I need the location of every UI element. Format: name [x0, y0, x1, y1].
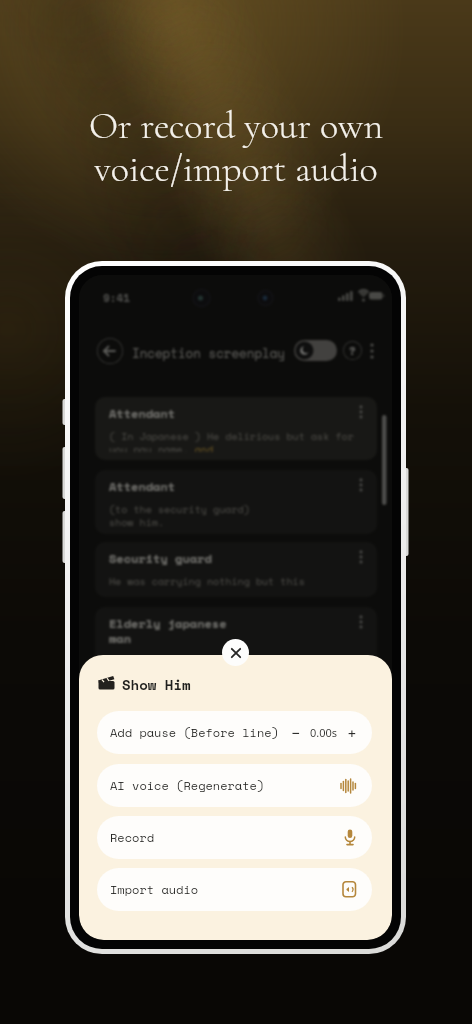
staticText: Security guard	[109, 550, 212, 568]
staticText: Elderly japanese man	[109, 615, 227, 647]
staticText: 0.00s	[310, 725, 338, 740]
staticText: Record	[110, 829, 155, 847]
button[interactable]: Attendant	[95, 470, 377, 534]
button[interactable]: Elderly japanese man	[95, 607, 377, 695]
staticText: +	[347, 721, 357, 745]
button[interactable]: Record	[97, 816, 372, 859]
staticText: Add pause (Before line)	[110, 724, 279, 742]
staticText: Import audio	[110, 881, 199, 899]
button[interactable]: Security guard	[95, 542, 377, 597]
staticText: Inception screenplay	[132, 344, 286, 363]
staticText: AI voice (Regenerate)	[110, 777, 265, 795]
button[interactable]: Add pause (Before line)	[97, 711, 372, 754]
staticText: Show Him	[122, 674, 191, 695]
button[interactable]	[222, 639, 249, 666]
button[interactable]: ?	[343, 341, 362, 360]
staticText: −	[291, 721, 301, 745]
button[interactable]: Import audio	[97, 868, 372, 911]
staticText: Attendant	[109, 405, 176, 423]
staticText: Attendant	[109, 478, 176, 496]
button[interactable]: AI voice (Regenerate)	[97, 764, 372, 807]
button[interactable]	[294, 340, 337, 361]
button[interactable]	[97, 338, 123, 364]
staticText: 9:41	[103, 290, 130, 306]
staticText: (to the security guard) show him.	[109, 502, 250, 526]
staticText: He was carrying nothing but this	[109, 574, 305, 589]
staticText: ?	[349, 343, 356, 359]
button[interactable]: Attendant	[95, 397, 377, 460]
staticText: ( In Japanese ) He delirious but ask for…	[109, 429, 354, 452]
staticText: Or record your own voice/import audio	[0, 103, 472, 192]
